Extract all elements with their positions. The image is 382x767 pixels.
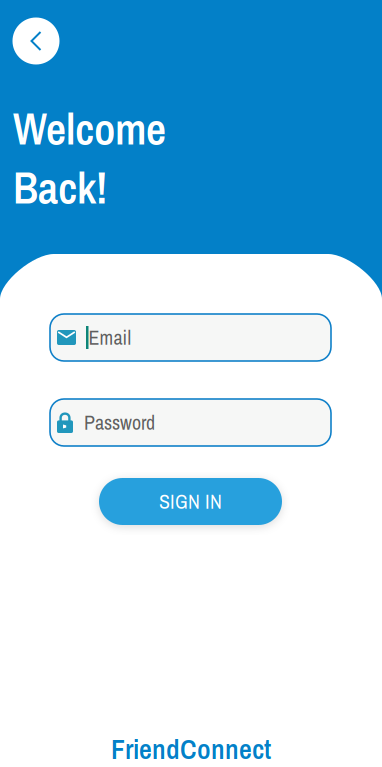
button[interactable]: Email [50, 314, 331, 361]
button[interactable]: Password [50, 399, 331, 446]
button[interactable]: SIGN IN [99, 478, 282, 525]
button[interactable]: Back [12, 17, 59, 64]
staticText: Welcome [13, 99, 166, 158]
staticText: SIGN IN [159, 488, 222, 515]
staticText: Password [84, 409, 155, 436]
staticText: FriendConnect [111, 730, 271, 767]
staticText: Email [88, 324, 131, 351]
staticText: Back! [13, 158, 107, 217]
